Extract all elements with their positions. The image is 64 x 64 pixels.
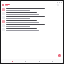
button[interactable]: Profile (50, 59, 54, 63)
button[interactable] (1, 11, 63, 15)
button[interactable] (1, 19, 63, 23)
button[interactable]: Alerts (37, 59, 41, 63)
button[interactable]: Home (10, 59, 14, 63)
button[interactable] (1, 27, 63, 31)
button[interactable]: Explore (23, 59, 27, 63)
button[interactable] (1, 7, 63, 11)
button[interactable]: Add (58, 54, 61, 57)
button[interactable] (1, 15, 63, 19)
button[interactable] (1, 23, 63, 27)
